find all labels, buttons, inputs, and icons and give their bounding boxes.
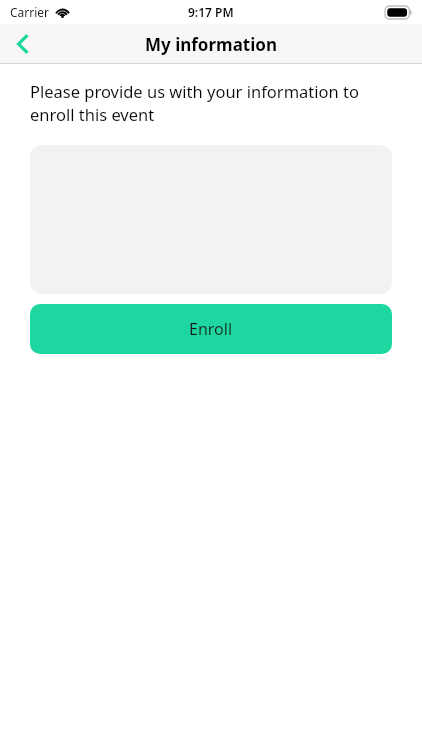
button[interactable]: Back: [0, 24, 46, 64]
staticText: Carrier: [10, 4, 50, 20]
staticText: 9:17 PM: [188, 4, 234, 20]
staticText: Enroll: [189, 318, 233, 340]
button[interactable]: Enroll: [30, 304, 392, 354]
staticText: Please provide us with your information …: [30, 80, 392, 126]
staticText: My information: [145, 33, 277, 56]
